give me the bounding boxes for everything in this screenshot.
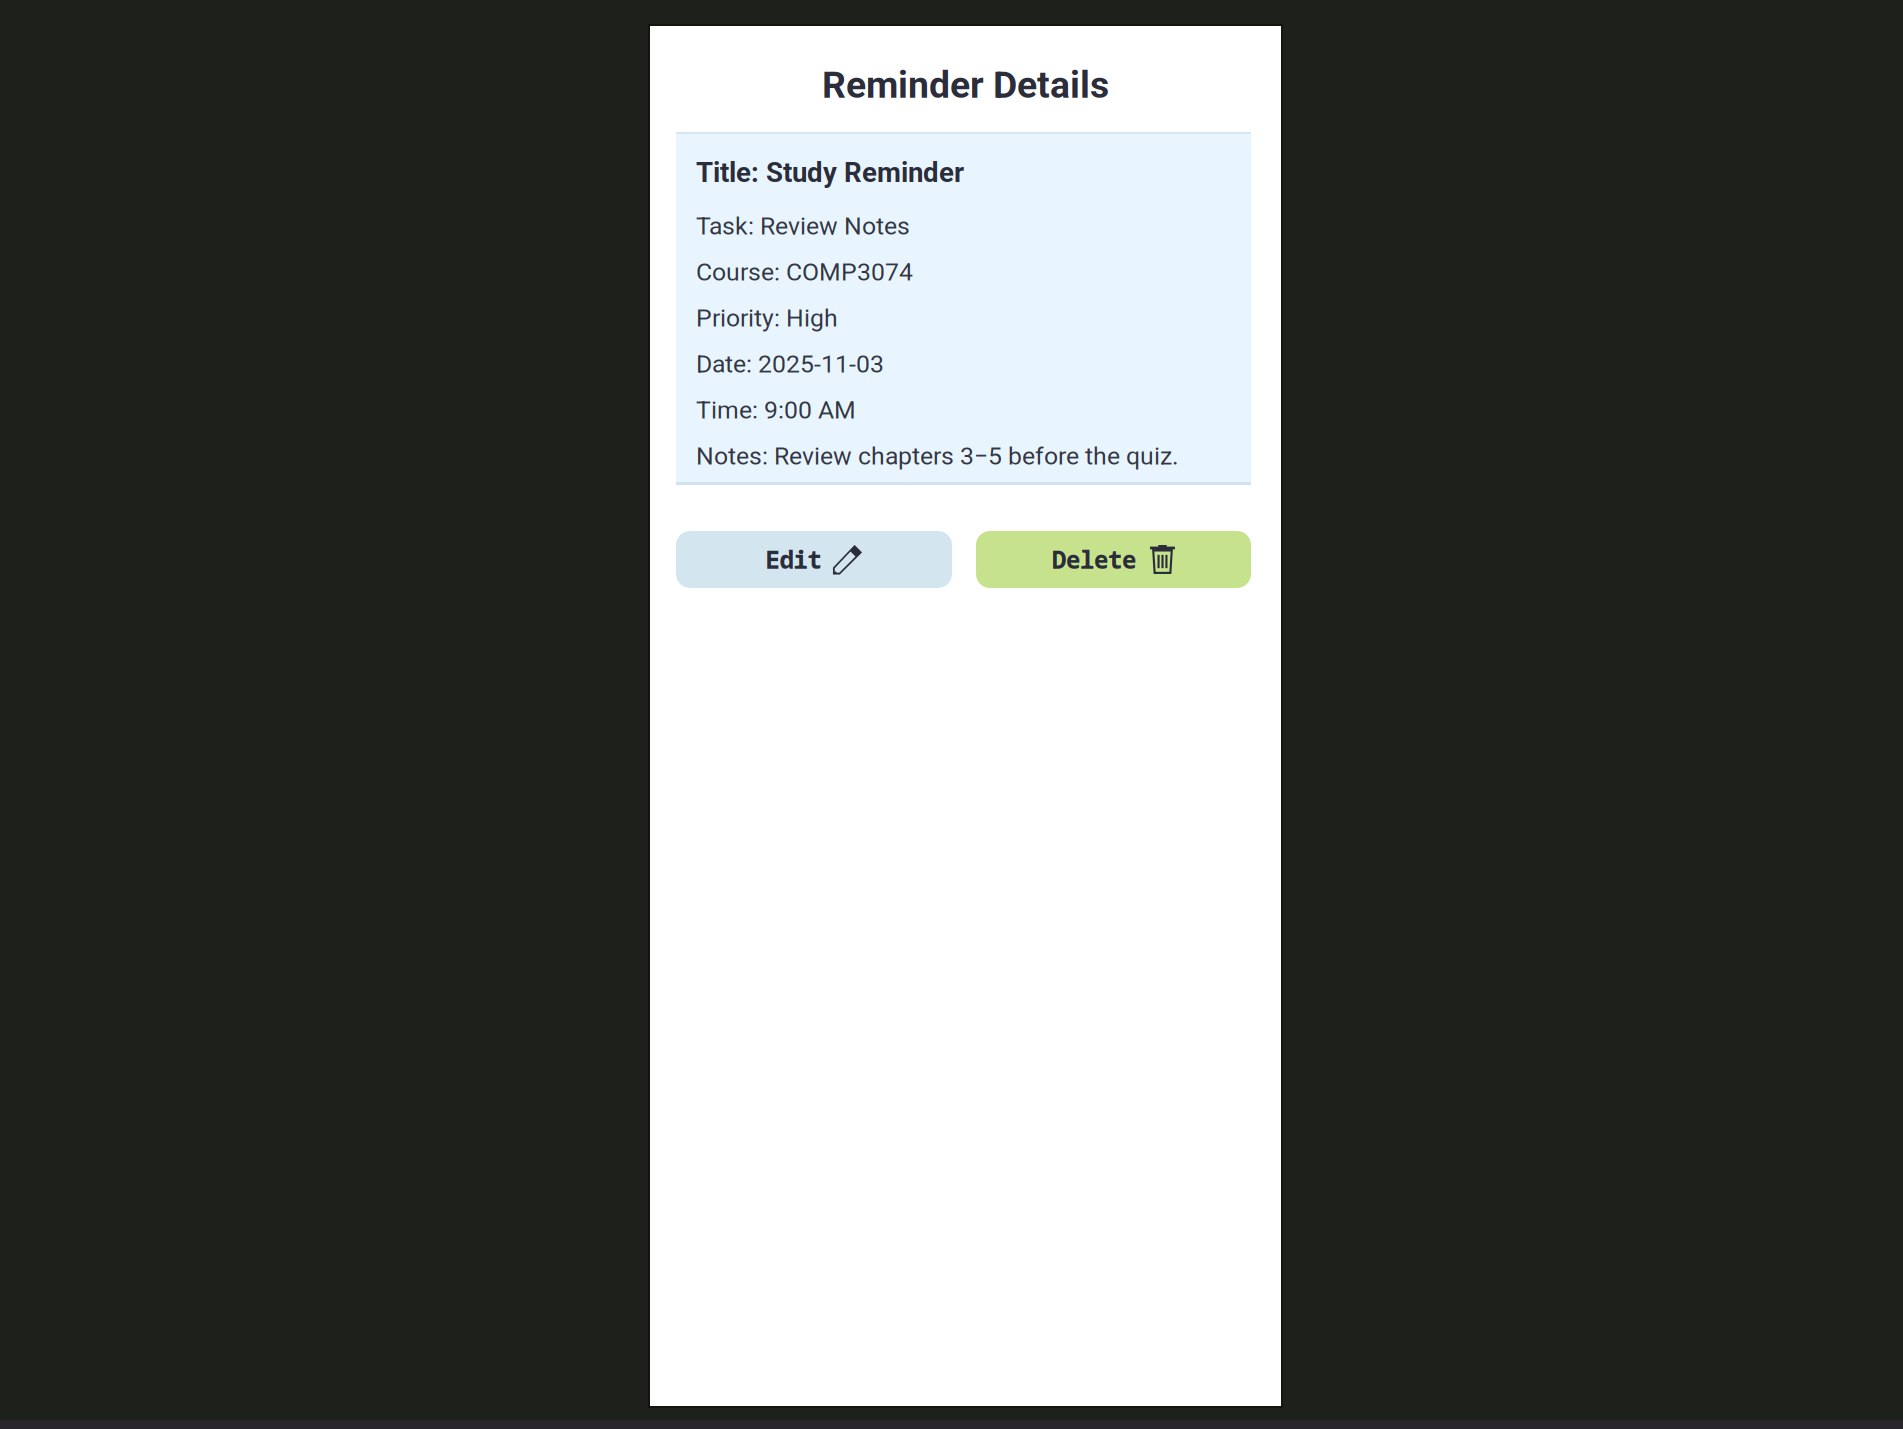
staticText: Notes: Review chapters 3−5 before the qu… <box>696 441 1179 471</box>
staticText: Reminder Details <box>822 63 1109 107</box>
staticText: Date: 2025-11-03 <box>696 349 884 379</box>
staticText: Title: Study Reminder <box>696 156 964 189</box>
button[interactable]: Edit reminder <box>676 531 952 588</box>
button[interactable]: Delete reminder <box>976 531 1251 588</box>
staticText: Time: 9:00 AM <box>696 395 856 425</box>
staticText: Edit <box>765 543 821 576</box>
staticText: Delete <box>1052 543 1136 576</box>
staticText: Priority: High <box>696 303 838 333</box>
staticText: Task: Review Notes <box>696 211 910 241</box>
staticText: Course: COMP3074 <box>696 257 913 287</box>
